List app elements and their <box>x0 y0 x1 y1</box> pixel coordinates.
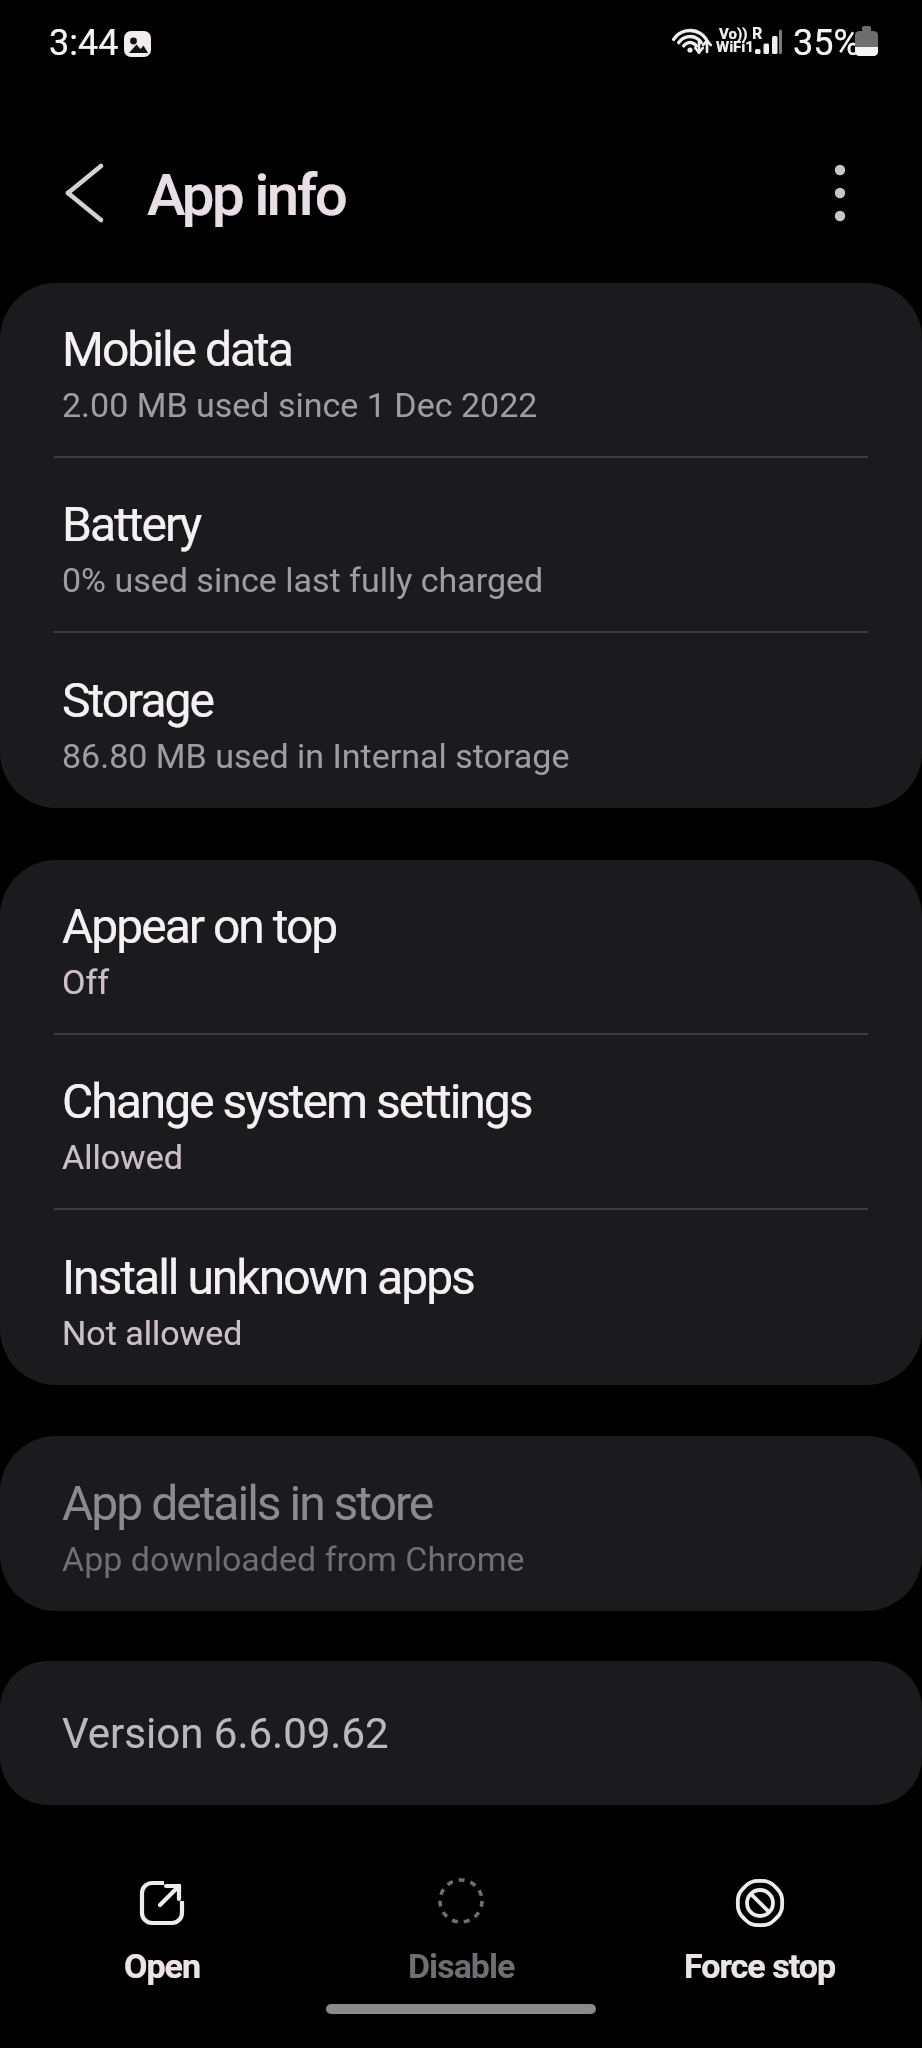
staticText: Change system settings <box>62 1073 532 1129</box>
button[interactable]: App details in store <box>0 1436 922 1611</box>
staticText: Storage <box>62 672 213 728</box>
staticText: App downloaded from Chrome <box>62 1539 525 1579</box>
button[interactable]: Open <box>62 1878 262 1986</box>
button[interactable] <box>800 143 880 243</box>
staticText: Allowed <box>62 1137 183 1177</box>
staticText: 2.00 MB used since 1 Dec 2022 <box>62 385 538 425</box>
staticText: Battery <box>62 496 201 552</box>
button[interactable]: Mobile data <box>0 283 922 456</box>
staticText: Vo)) <box>719 25 748 43</box>
staticText: Install unknown apps <box>62 1249 474 1305</box>
staticText: Mobile data <box>62 321 292 377</box>
staticText: R <box>752 24 763 43</box>
button[interactable]: Version 6.6.09.62 <box>0 1661 922 1805</box>
button[interactable]: Change system settings <box>0 1035 922 1208</box>
staticText: Not allowed <box>62 1313 243 1353</box>
button[interactable] <box>35 143 135 243</box>
staticText: 3:44 <box>49 22 119 64</box>
button[interactable]: Appear on top <box>0 860 922 1033</box>
staticText: 35% <box>793 22 860 64</box>
staticText: 86.80 MB used in Internal storage <box>62 736 570 776</box>
button[interactable]: Storage <box>0 633 922 808</box>
staticText: 0% used since last fully charged <box>62 560 544 600</box>
staticText: Off <box>62 962 110 1002</box>
staticText: Appear on top <box>62 898 337 954</box>
staticText: Disable <box>408 1946 515 1986</box>
staticText: Version 6.6.09.62 <box>62 1709 389 1758</box>
staticText: App details in store <box>62 1475 433 1531</box>
staticText: App info <box>147 161 346 229</box>
staticText: WiFi1 <box>716 38 754 56</box>
staticText: Force stop <box>684 1946 836 1986</box>
button[interactable]: Install unknown apps <box>0 1210 922 1385</box>
button[interactable]: Disable <box>361 1878 561 1986</box>
button[interactable]: Force stop <box>660 1878 860 1986</box>
button[interactable]: Battery <box>0 458 922 631</box>
staticText: Open <box>124 1946 201 1986</box>
